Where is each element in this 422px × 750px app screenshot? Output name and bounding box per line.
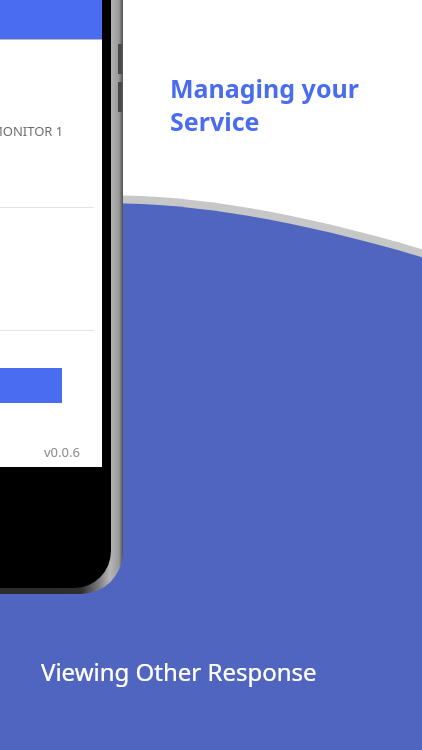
staticText: Managing your Service [170, 71, 359, 138]
staticText: v0.0.6 [44, 443, 80, 461]
staticText: Viewing Other Response [41, 655, 317, 688]
staticText: MONITOR 1 [0, 122, 64, 140]
